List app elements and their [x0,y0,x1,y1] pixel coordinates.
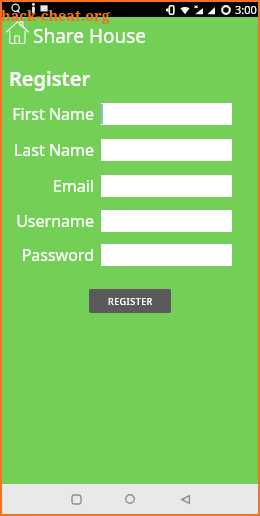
button[interactable]: Home [116,485,144,513]
staticText: REGISTER [108,295,153,307]
staticText: First Name [4,103,94,125]
other: Share House [6,21,29,44]
button[interactable]: Recents [62,485,90,513]
button[interactable]: Back [171,485,199,513]
staticText: Last Name [4,139,94,161]
staticText: Username [4,210,94,232]
staticText: 3:00 [235,2,257,17]
button[interactable]: REGISTER [89,289,171,313]
staticText: hack-cheat.org [1,5,110,25]
staticText: Share House [33,23,147,49]
button[interactable] [101,103,232,125]
staticText: Password [4,244,94,266]
staticText: Register [9,65,91,92]
staticText: Email [4,175,94,197]
